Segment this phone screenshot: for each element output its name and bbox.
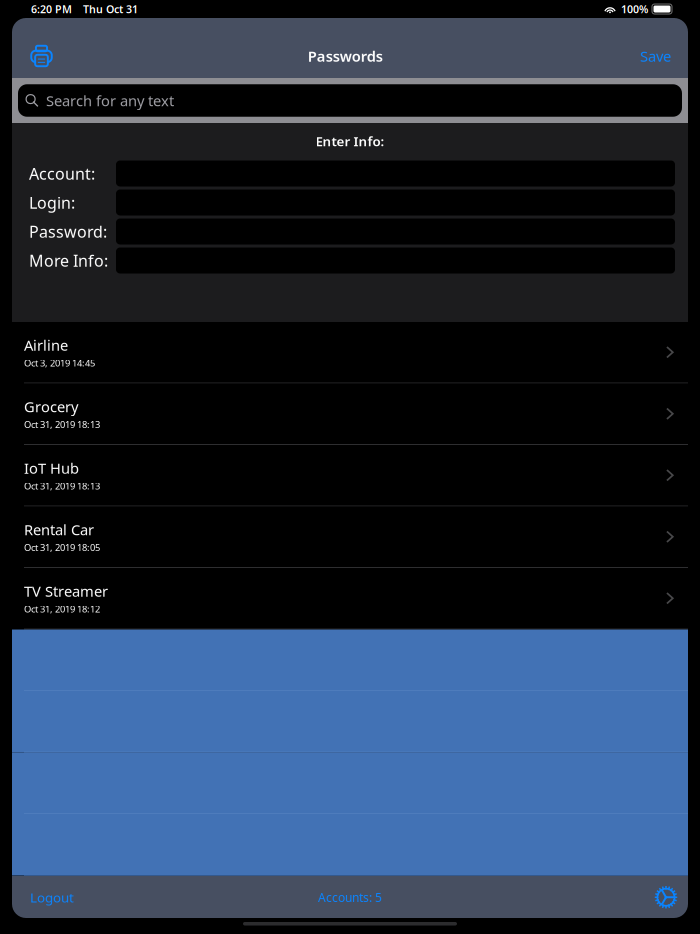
staticText: Accounts: 5	[318, 889, 382, 905]
button[interactable]: Print	[19, 34, 63, 78]
button[interactable]: Grocery	[12, 383, 688, 445]
staticText: More Info:	[29, 250, 108, 271]
staticText: Rental Car	[24, 520, 94, 539]
staticText: Account:	[29, 163, 95, 184]
button[interactable]: TV Streamer	[12, 568, 688, 629]
button[interactable]: Save	[627, 34, 671, 78]
staticText: Oct 31, 2019 18:12	[24, 603, 100, 615]
staticText: Oct 31, 2019 18:13	[24, 480, 100, 492]
button[interactable]: Airline	[12, 322, 688, 383]
staticText: Enter Info:	[315, 132, 384, 150]
staticText: Oct 31, 2019 18:13	[24, 418, 100, 431]
staticText: IoT Hub	[24, 458, 79, 478]
staticText: Thu Oct 31	[83, 2, 138, 16]
staticText: Password:	[29, 221, 107, 242]
staticText: Search for any text	[46, 91, 174, 110]
staticText: Logout	[30, 888, 74, 906]
button[interactable]: Settings	[649, 876, 683, 918]
button[interactable]: Logout	[30, 876, 74, 918]
staticText: Login:	[29, 192, 75, 213]
button[interactable]: Rental Car	[12, 506, 688, 568]
staticText: TV Streamer	[24, 581, 108, 601]
staticText: Grocery	[24, 397, 78, 416]
button[interactable]: IoT Hub	[12, 445, 688, 506]
staticText: Save	[640, 46, 671, 66]
staticText: Oct 31, 2019 18:05	[24, 541, 100, 554]
staticText: 6:20 PM	[31, 2, 72, 16]
staticText: 100%	[621, 2, 648, 16]
staticText: Airline	[24, 335, 68, 355]
staticText: Oct 3, 2019 14:45	[24, 357, 95, 369]
staticText: Passwords	[308, 46, 383, 66]
